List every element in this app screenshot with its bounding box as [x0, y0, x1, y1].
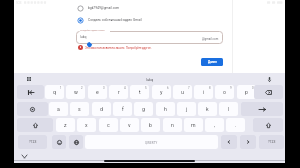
button[interactable]: tab: [17, 85, 44, 99]
button[interactable]: i: [194, 85, 213, 99]
staticText: j: [186, 106, 188, 112]
staticText: u: [181, 89, 184, 95]
staticText: w: [74, 89, 78, 95]
button[interactable]: Voice input: [264, 74, 274, 84]
staticText: 7: [188, 86, 190, 89]
staticText: n: [171, 122, 174, 128]
staticText: .: [235, 122, 237, 128]
button[interactable]: Shift: [253, 118, 283, 132]
button[interactable]: Change language: [69, 135, 83, 149]
button[interactable]: j: [177, 102, 196, 116]
button[interactable]: e: [88, 85, 107, 99]
staticText: 1: [60, 86, 62, 89]
button[interactable]: QWERTY: [85, 135, 218, 149]
staticText: x: [85, 122, 88, 128]
button[interactable]: n: [163, 118, 182, 132]
staticText: ?123: [29, 140, 37, 144]
button[interactable]: bgk7949@gmail.com: [77, 3, 227, 13]
staticText: h: [164, 106, 167, 112]
staticText: i: [203, 89, 205, 95]
button[interactable]: h: [156, 102, 175, 116]
staticText: 3: [103, 86, 105, 89]
staticText: QWERTY: [145, 141, 158, 144]
staticText: g: [142, 106, 145, 112]
button[interactable]: v: [120, 118, 139, 132]
staticText: Это имя пользователя занято. Попробуйте …: [85, 46, 152, 49]
staticText: y: [160, 89, 163, 95]
staticText: 8: [209, 86, 211, 89]
staticText: d: [100, 106, 103, 112]
staticText: 4: [124, 86, 126, 89]
staticText: ,: [214, 122, 216, 128]
button[interactable]: t: [130, 85, 149, 99]
staticText: @gmail.com: [202, 37, 219, 40]
button[interactable]: Previous: [221, 135, 237, 149]
button[interactable]: ,: [205, 118, 224, 132]
staticText: 5: [145, 86, 147, 89]
button[interactable]: b: [141, 118, 160, 132]
staticText: c: [107, 122, 110, 128]
button[interactable]: a: [49, 102, 68, 116]
button[interactable]: Caps lock: [17, 102, 48, 116]
button[interactable]: Hide keyboard: [20, 152, 29, 161]
button[interactable]: w: [66, 85, 85, 99]
staticText: p: [245, 89, 248, 95]
staticText: t: [139, 89, 141, 95]
staticText: o: [223, 89, 226, 95]
button[interactable]: u: [173, 85, 192, 99]
button[interactable]: r: [109, 85, 128, 99]
button[interactable]: o: [215, 85, 234, 99]
staticText: 2: [81, 86, 83, 89]
button[interactable]: f: [113, 102, 132, 116]
button[interactable]: x: [77, 118, 96, 132]
staticText: 9:28: [16, 1, 22, 4]
staticText: 6: [167, 86, 169, 89]
button[interactable]: Backspace: [254, 85, 283, 99]
staticText: b: [149, 122, 152, 128]
button[interactable]: m: [184, 118, 203, 132]
staticText: r: [118, 89, 120, 95]
button[interactable]: y: [152, 85, 171, 99]
staticText: k: [206, 106, 209, 112]
staticText: e: [96, 89, 99, 95]
staticText: Далее: [208, 60, 217, 64]
button[interactable]: ?123: [259, 135, 284, 149]
staticText: a: [57, 106, 60, 112]
staticText: bgk7949@gmail.com: [88, 6, 120, 10]
button[interactable]: Emoji: [52, 135, 66, 149]
staticText: Создайте адрес Gmail: [80, 29, 105, 32]
staticText: z: [64, 122, 67, 128]
button[interactable]: Next: [240, 135, 256, 149]
staticText: 0: [252, 86, 254, 89]
button[interactable]: Shift: [17, 118, 53, 132]
staticText: q: [53, 89, 56, 95]
button[interactable]: Создать собственный адрес Gmail: [77, 15, 227, 25]
staticText: v: [128, 122, 131, 128]
button[interactable]: q: [45, 85, 64, 99]
button[interactable]: .: [226, 118, 245, 132]
staticText: lukq: [80, 35, 87, 39]
button[interactable]: Это имя пользователя занято. Попробуйте …: [78, 45, 152, 50]
staticText: lukq: [146, 77, 154, 81]
staticText: 9: [230, 86, 232, 89]
staticText: f: [122, 106, 124, 112]
staticText: Создать собственный адрес Gmail: [88, 18, 142, 22]
button[interactable]: Toolbar: [24, 74, 34, 84]
button[interactable]: Далее: [201, 58, 223, 66]
button[interactable]: p: [237, 85, 256, 99]
button[interactable]: s: [70, 102, 89, 116]
staticText: s: [78, 106, 81, 112]
button[interactable]: l: [219, 102, 238, 116]
button[interactable]: d: [92, 102, 111, 116]
button[interactable]: k: [198, 102, 217, 116]
staticText: m: [191, 122, 196, 128]
button[interactable]: c: [99, 118, 118, 132]
button[interactable]: g: [134, 102, 153, 116]
staticText: ?123: [268, 140, 276, 144]
button[interactable]: ?123: [18, 135, 47, 149]
button[interactable]: Enter: [241, 102, 283, 116]
button[interactable]: z: [56, 118, 75, 132]
staticText: l: [228, 106, 230, 112]
